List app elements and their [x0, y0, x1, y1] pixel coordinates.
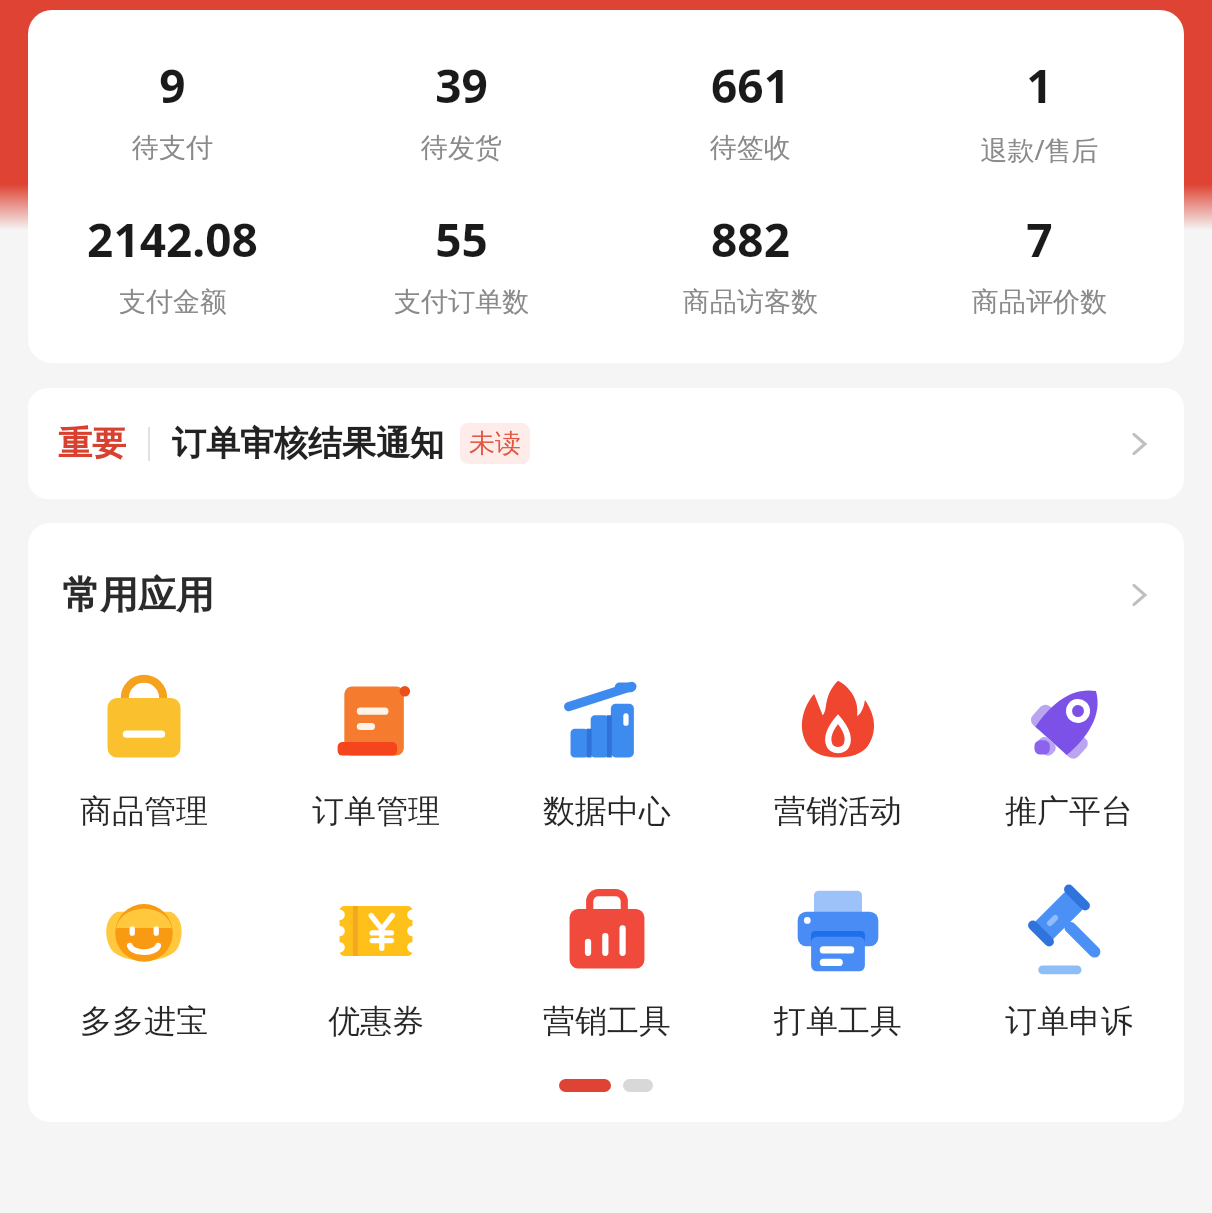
- button[interactable]: 打单工具: [722, 877, 953, 1043]
- button[interactable]: 2142.08: [28, 206, 317, 321]
- staticText: 商品管理: [80, 791, 208, 831]
- other: 营销工具: [559, 883, 655, 979]
- other: 订单管理: [328, 673, 424, 769]
- button[interactable]: 营销活动: [722, 667, 953, 833]
- staticText: 支付金额: [119, 285, 227, 319]
- button[interactable]: 882: [606, 206, 895, 321]
- staticText: 882: [711, 208, 790, 271]
- staticText: 待发货: [421, 131, 502, 165]
- staticText: 9: [159, 54, 186, 117]
- staticText: 待支付: [132, 131, 213, 165]
- other: 数据中心: [559, 673, 655, 769]
- staticText: 营销工具: [543, 1001, 671, 1041]
- staticText: 数据中心: [543, 791, 671, 831]
- staticText: 2142.08: [87, 208, 258, 271]
- staticText: 未读: [469, 427, 521, 460]
- staticText: 重要: [58, 422, 126, 465]
- button[interactable]: 营销工具: [491, 877, 722, 1043]
- staticText: 55: [435, 208, 488, 271]
- staticText: 39: [435, 54, 488, 117]
- button[interactable]: 商品管理: [28, 667, 260, 833]
- other: 订单申诉: [1021, 883, 1117, 979]
- staticText: 订单申诉: [1005, 1001, 1133, 1041]
- staticText: 商品评价数: [972, 285, 1107, 319]
- button[interactable]: 1: [895, 52, 1184, 170]
- staticText: 待签收: [710, 131, 791, 165]
- button[interactable]: 39: [317, 52, 606, 167]
- staticText: 退款/售后: [980, 131, 1099, 168]
- staticText: 商品访客数: [683, 285, 818, 319]
- button[interactable]: 订单申诉: [953, 877, 1184, 1043]
- staticText: 打单工具: [774, 1001, 902, 1041]
- button[interactable]: 9: [28, 52, 317, 167]
- button[interactable]: 55: [317, 206, 606, 321]
- staticText: 支付订单数: [394, 285, 529, 319]
- button[interactable]: 661: [606, 52, 895, 167]
- button[interactable]: 推广平台: [953, 667, 1184, 833]
- staticText: 营销活动: [774, 791, 902, 831]
- other: 商品管理: [96, 673, 192, 769]
- staticText: 常用应用: [62, 571, 214, 619]
- button[interactable]: 常用应用: [28, 523, 1184, 629]
- button[interactable]: 优惠券: [260, 877, 491, 1043]
- button[interactable]: 重要: [28, 388, 1184, 499]
- staticText: 多多进宝: [80, 1001, 208, 1041]
- staticText: 推广平台: [1005, 791, 1133, 831]
- other: 多多进宝: [96, 883, 192, 979]
- staticText: 订单管理: [312, 791, 440, 831]
- staticText: 优惠券: [328, 1001, 424, 1041]
- button[interactable]: 订单管理: [260, 667, 491, 833]
- button[interactable]: 数据中心: [491, 667, 722, 833]
- other: 优惠券: [328, 883, 424, 979]
- staticText: 1: [1026, 54, 1053, 117]
- button[interactable]: 多多进宝: [28, 877, 260, 1043]
- staticText: 订单审核结果通知: [172, 422, 444, 465]
- staticText: 661: [711, 54, 790, 117]
- staticText: 7: [1026, 208, 1053, 271]
- other: 推广平台: [1021, 673, 1117, 769]
- other: 打单工具: [790, 883, 886, 979]
- other: 营销活动: [790, 673, 886, 769]
- button[interactable]: 7: [895, 206, 1184, 321]
